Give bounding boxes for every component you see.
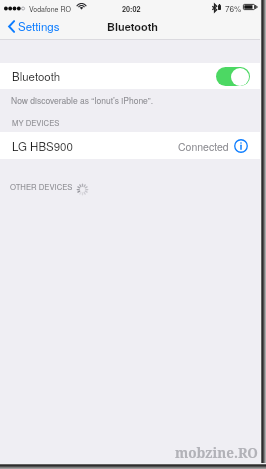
staticText: Vodafone RO	[29, 4, 71, 14]
staticText: MY DEVICES	[12, 117, 60, 128]
button[interactable]: Device info	[233, 138, 249, 154]
button[interactable]: Settings	[0, 18, 68, 34]
staticText: mobzine.RO	[175, 444, 258, 462]
staticText: LG HBS900	[12, 138, 73, 154]
staticText: 20:02	[122, 4, 141, 14]
button[interactable]: Bluetooth	[0, 63, 266, 89]
staticText: Settings	[18, 18, 60, 34]
staticText: Connected	[178, 139, 229, 154]
button[interactable]: LG HBS900	[0, 132, 266, 159]
staticText: Now discoverable as “Ionut’s iPhone”.	[11, 94, 154, 106]
button[interactable]: Bluetooth on	[216, 67, 250, 86]
staticText: Bluetooth	[107, 19, 159, 35]
staticText: 76%	[225, 3, 242, 15]
staticText: OTHER DEVICES	[10, 181, 73, 192]
staticText: Bluetooth	[12, 68, 61, 84]
